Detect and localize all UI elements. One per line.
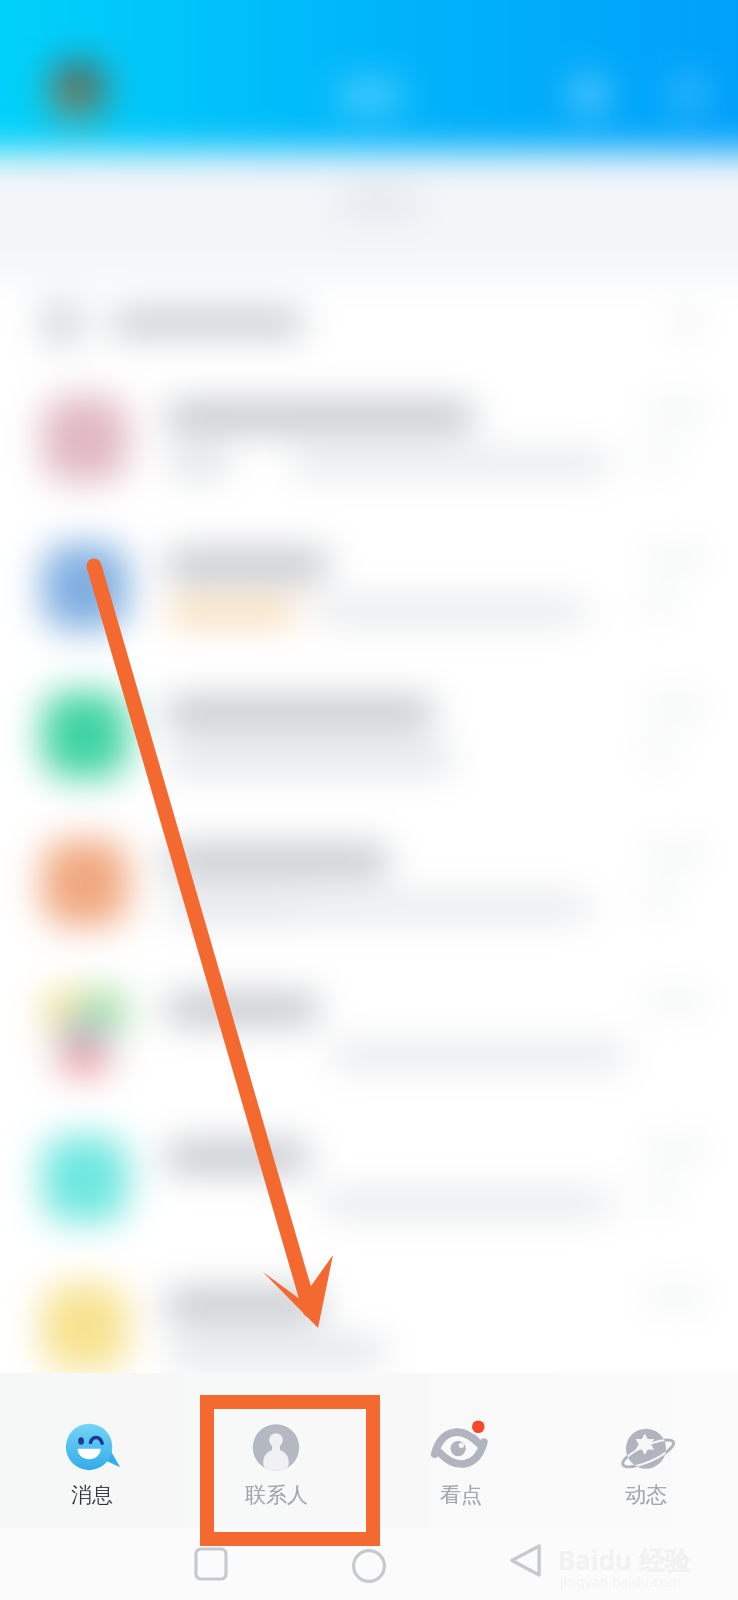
button[interactable]: 看点 [368, 1373, 553, 1528]
staticText: 动态 [625, 1482, 667, 1508]
button[interactable]: 消息 [0, 1373, 184, 1528]
staticText: 看点 [440, 1482, 482, 1508]
button[interactable]: Home [352, 1549, 386, 1583]
button[interactable]: 联系人 [184, 1373, 368, 1528]
button[interactable]: Recents [196, 1549, 226, 1579]
button[interactable]: Back [510, 1545, 541, 1576]
staticText: 联系人 [245, 1482, 308, 1508]
button[interactable]: 动态 [553, 1373, 738, 1528]
staticText: Baidu 经验 [558, 1542, 691, 1578]
staticText: 消息 [71, 1482, 113, 1508]
